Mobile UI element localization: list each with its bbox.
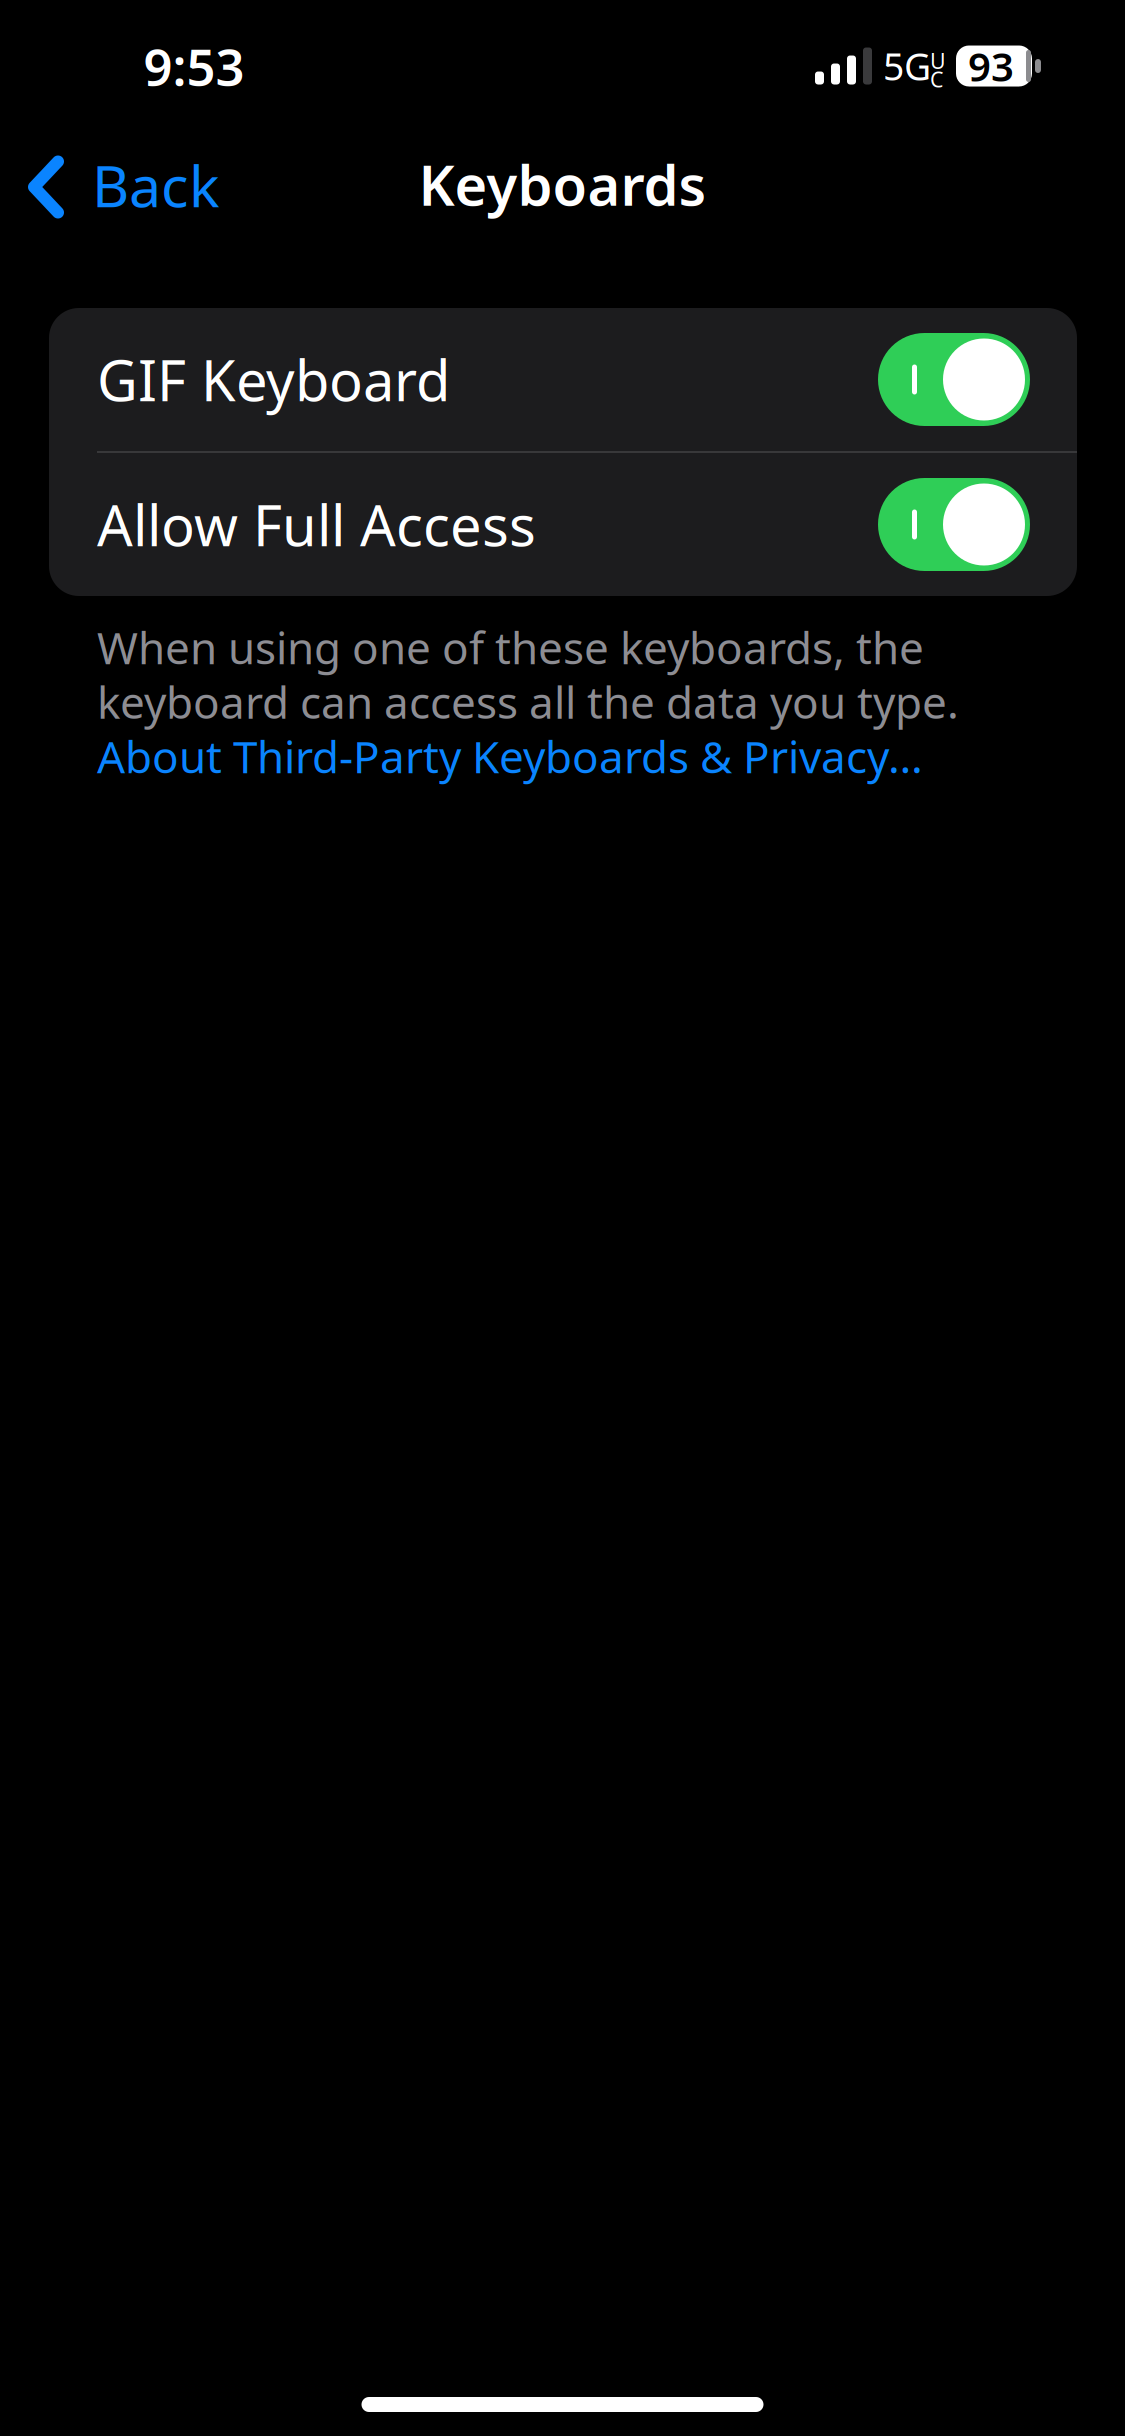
- staticText: Allow Full Access: [97, 487, 536, 562]
- staticText: U: [930, 47, 946, 75]
- staticText: Back: [92, 147, 220, 223]
- staticText: Keyboards: [418, 147, 706, 221]
- staticText: C: [930, 65, 943, 93]
- staticText: 5G: [883, 41, 931, 91]
- staticText: About Third-Party Keyboards & Privacy…: [97, 727, 923, 785]
- button[interactable]: Allow Full Access: [878, 478, 1030, 571]
- button[interactable]: Back: [0, 132, 242, 244]
- staticText: When using one of these keyboards, the k…: [97, 618, 959, 731]
- button[interactable]: GIF Keyboard: [878, 333, 1030, 426]
- staticText: GIF Keyboard: [97, 342, 450, 417]
- button[interactable]: About Third-Party Keyboards & Privacy…: [97, 727, 923, 785]
- staticText: 9:53: [143, 32, 244, 100]
- staticText: 93: [968, 39, 1014, 92]
